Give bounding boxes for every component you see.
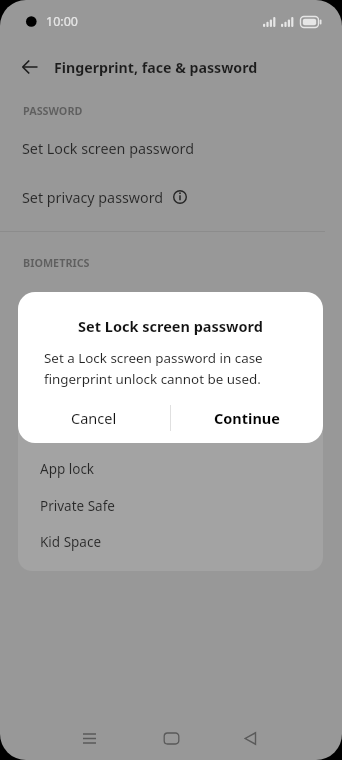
staticText: Set privacy password [22, 188, 164, 207]
staticText: Continue [214, 408, 280, 428]
button[interactable] [142, 722, 200, 754]
button[interactable]: Cancel [18, 400, 170, 436]
staticText: Fingerprint, face & password [54, 58, 258, 77]
staticText: Private Safe [40, 497, 115, 515]
button[interactable]: Private Safe [18, 488, 323, 523]
staticText: Kid Space [40, 533, 102, 551]
button[interactable] [221, 722, 279, 754]
staticText: 10:00 [46, 13, 78, 30]
button[interactable]: Kid Space [18, 524, 323, 559]
button[interactable]: App lock [18, 451, 323, 486]
staticText: fingerprint unlock cannot be used. [44, 370, 261, 388]
button[interactable]: Continue [171, 400, 323, 436]
staticText: Set Lock screen password [22, 139, 194, 158]
staticText: BIOMETRICS [23, 255, 90, 270]
staticText: PASSWORD [23, 103, 83, 118]
staticText: App lock [40, 460, 95, 478]
staticText: Set Lock screen password [18, 316, 323, 336]
button[interactable]: Set privacy password [0, 180, 342, 214]
staticText: Set a Lock screen password in case [44, 349, 263, 367]
staticText: Cancel [71, 408, 117, 428]
button[interactable]: Set Lock screen password [0, 131, 342, 165]
button[interactable] [60, 722, 118, 754]
button[interactable]: Fingerprint, face & password [0, 48, 342, 86]
